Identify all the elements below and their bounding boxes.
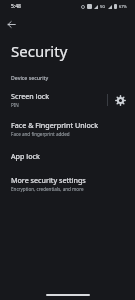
- staticText: Security: [11, 41, 68, 61]
- staticText: Device security: [11, 74, 49, 81]
- button[interactable]: Face & Fingerprint Unlock: [0, 117, 135, 140]
- button[interactable]: Screen lock: [0, 88, 135, 111]
- staticText: App lock: [11, 151, 40, 161]
- button[interactable]: Screen lock settings: [113, 93, 127, 107]
- staticText: More security settings: [11, 175, 86, 185]
- staticText: Face & Fingerprint Unlock: [11, 120, 99, 130]
- button[interactable]: More security settings: [0, 172, 135, 195]
- staticText: Encryption, credentials, and more: [11, 186, 84, 192]
- staticText: Face and fingerprint added: [11, 131, 70, 137]
- staticText: Screen lock: [11, 91, 50, 101]
- staticText: 67%: [119, 4, 127, 9]
- button[interactable]: App lock: [0, 148, 135, 164]
- staticText: PIN: [11, 102, 19, 108]
- staticText: 5G: [100, 4, 106, 9]
- button[interactable]: Back: [3, 16, 19, 32]
- staticText: 5:48: [11, 3, 21, 10]
